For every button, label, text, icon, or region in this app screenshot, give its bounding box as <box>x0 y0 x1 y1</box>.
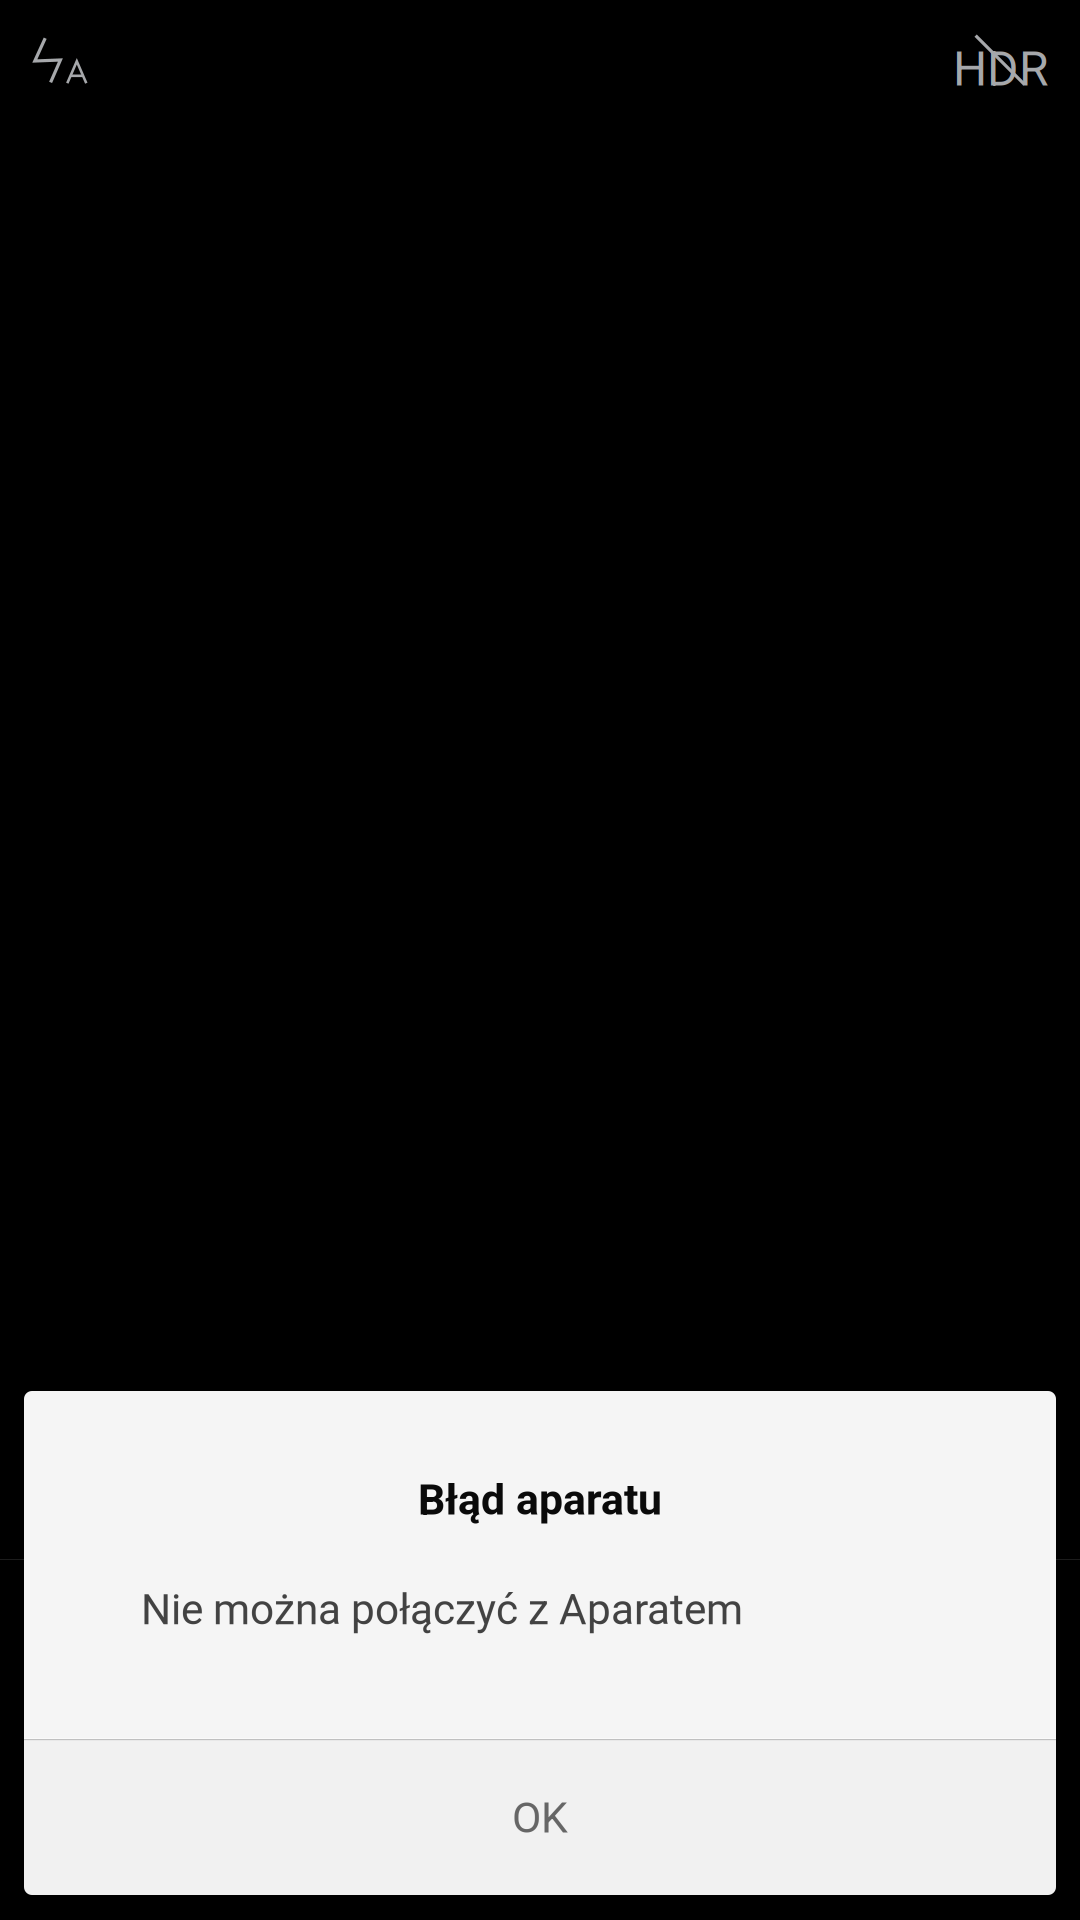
button[interactable]: Flash auto <box>0 0 128 120</box>
staticText: Błąd aparatu <box>418 1475 662 1525</box>
staticText: HDR <box>953 41 1049 97</box>
button[interactable]: HDR off <box>920 0 1080 120</box>
staticText: OK <box>512 1793 568 1843</box>
staticText: Nie można połączyć z Aparatem <box>141 1585 743 1634</box>
button[interactable]: OK <box>24 1741 1056 1895</box>
